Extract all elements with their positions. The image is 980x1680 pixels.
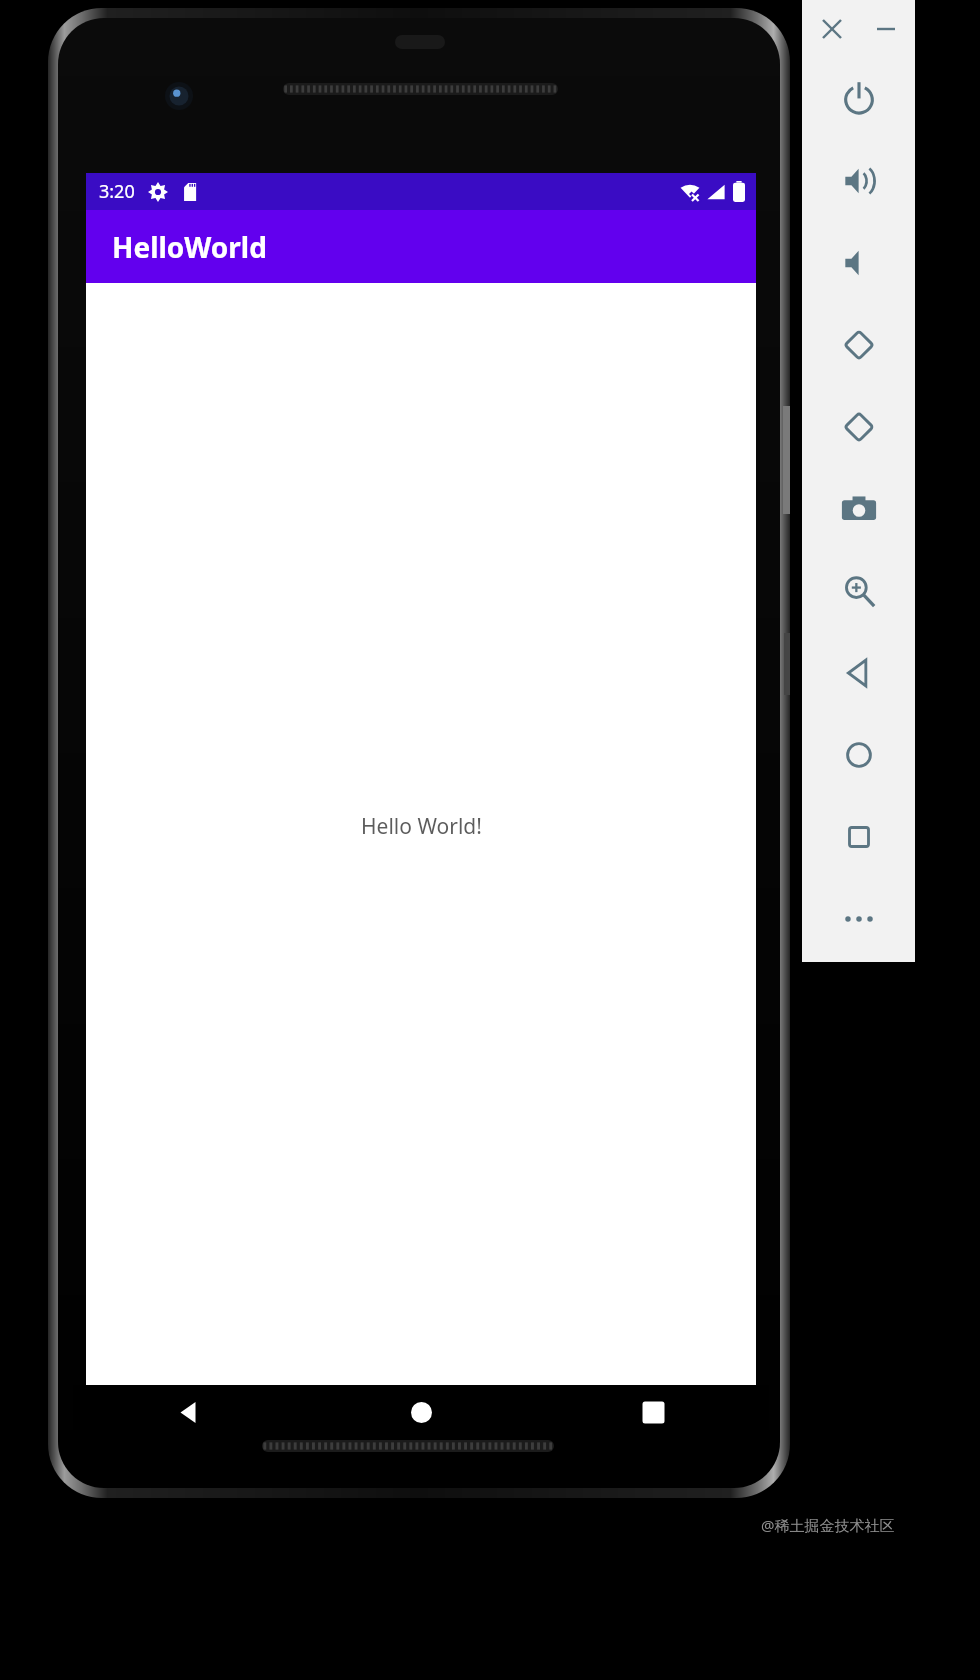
button[interactable]: HelloWorld	[86, 210, 756, 283]
button[interactable]: Volume up	[802, 140, 915, 222]
button[interactable]: Take screenshot	[802, 468, 915, 550]
button[interactable]: Overview	[802, 796, 915, 878]
button[interactable]: Minimize	[868, 11, 904, 47]
button[interactable]: Rotate left	[802, 304, 915, 386]
button[interactable]: Rotate right	[802, 386, 915, 468]
button[interactable]: Volume down	[802, 222, 915, 304]
button[interactable]: Zoom	[802, 550, 915, 632]
staticText: Hello World!	[361, 812, 482, 841]
button[interactable]: Power	[802, 58, 915, 140]
button[interactable]: Back	[802, 632, 915, 714]
staticText: 3:20	[99, 179, 135, 204]
button[interactable]: More	[802, 878, 915, 960]
button[interactable]: Close	[814, 11, 850, 47]
staticText: HelloWorld	[112, 228, 267, 266]
staticText: @稀土掘金技术社区	[761, 1515, 895, 1535]
button[interactable]: Home	[802, 714, 915, 796]
button[interactable]: Home	[305, 1385, 537, 1439]
button[interactable]: Back	[73, 1385, 305, 1439]
button[interactable]: Recent apps	[537, 1385, 769, 1439]
